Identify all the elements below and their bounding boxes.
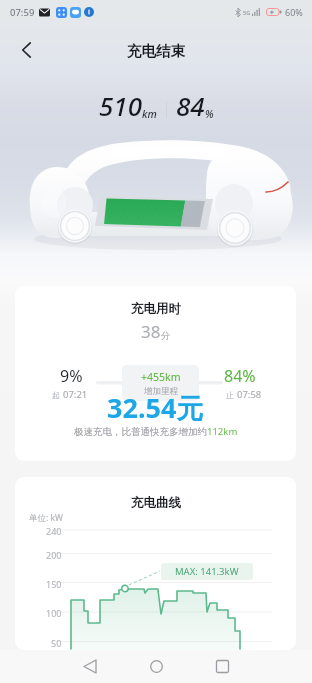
staticText: 07:21 [63, 388, 88, 401]
staticText: 150 [46, 578, 62, 590]
staticText: 84% [224, 365, 256, 387]
staticText: 38 [141, 320, 161, 343]
button[interactable]: Home [140, 650, 172, 683]
staticText: 112km [207, 425, 238, 438]
staticText: 07:59 [10, 6, 35, 19]
staticText: 100 [46, 607, 62, 619]
staticText: 07:58 [237, 388, 262, 401]
staticText: 50 [51, 637, 62, 649]
staticText: 单位: kW [29, 512, 63, 524]
staticText: 84 [176, 88, 205, 123]
staticText: MAX: 141.3kW [175, 565, 239, 578]
staticText: 32.54元 [107, 389, 204, 426]
staticText: 9% [60, 365, 83, 387]
staticText: 极速充电，比普通快充多增加约 [74, 426, 207, 438]
staticText: km [142, 107, 157, 121]
staticText: 充电用时 [131, 301, 181, 317]
staticText: 充电曲线 [131, 495, 181, 511]
staticText: 止 [226, 390, 234, 400]
staticText: 240 [46, 525, 62, 537]
button[interactable]: Back [10, 34, 42, 66]
button[interactable]: Recent apps [206, 650, 238, 683]
staticText: 200 [46, 549, 62, 561]
button[interactable]: Back [74, 650, 106, 683]
staticText: 60% [285, 6, 303, 18]
staticText: 510 [99, 88, 142, 123]
staticText: 充电结束 [127, 42, 185, 60]
staticText: 起 [52, 390, 60, 400]
staticText: 5G [243, 9, 251, 16]
staticText: +455km [141, 370, 181, 384]
staticText: 增加里程 [144, 386, 178, 397]
staticText: % [205, 107, 214, 121]
staticText: 分 [161, 330, 171, 342]
